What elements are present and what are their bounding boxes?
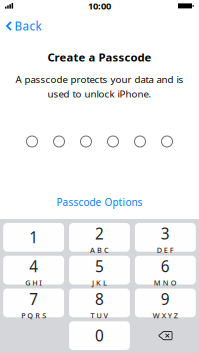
button[interactable]: 2 bbox=[69, 223, 130, 252]
staticText: 5 bbox=[95, 256, 104, 277]
button[interactable]: Delete bbox=[135, 321, 196, 350]
staticText: 10:00 bbox=[88, 0, 111, 12]
staticText: A passcode protects your data and is bbox=[15, 73, 183, 86]
staticText: Passcode Options bbox=[56, 195, 142, 209]
staticText: 4 bbox=[29, 256, 38, 277]
staticText: P Q R S bbox=[21, 310, 46, 320]
button[interactable]: 3 bbox=[135, 223, 196, 252]
staticText: 2 bbox=[95, 223, 104, 244]
button[interactable]: 5 bbox=[69, 256, 130, 285]
staticText: 3 bbox=[161, 223, 170, 244]
staticText: M N O bbox=[154, 278, 177, 288]
staticText: 1 bbox=[29, 227, 38, 248]
staticText: 6 bbox=[161, 256, 170, 277]
staticText: G H I bbox=[25, 278, 42, 288]
button[interactable]: 4 bbox=[3, 256, 64, 285]
staticText: Back bbox=[14, 18, 41, 34]
button[interactable]: Passcode Options bbox=[48, 191, 150, 213]
staticText: D E F bbox=[157, 245, 174, 255]
button[interactable]: Back bbox=[0, 13, 49, 39]
staticText: used to unlock iPhone. bbox=[47, 87, 151, 100]
button[interactable]: 7 bbox=[3, 288, 64, 317]
staticText: A B C bbox=[90, 245, 109, 255]
staticText: 0 bbox=[95, 325, 104, 346]
staticText: Create a Passcode bbox=[47, 49, 151, 65]
staticText: 7 bbox=[29, 288, 38, 309]
staticText: J K L bbox=[92, 278, 107, 288]
button[interactable]: 8 bbox=[69, 288, 130, 317]
button[interactable]: 9 bbox=[135, 288, 196, 317]
button[interactable]: 0 bbox=[69, 321, 130, 350]
button[interactable]: 6 bbox=[135, 256, 196, 285]
button[interactable]: 1 bbox=[3, 223, 64, 252]
staticText: 8 bbox=[95, 288, 104, 309]
staticText: W X Y Z bbox=[153, 310, 178, 320]
staticText: T U V bbox=[90, 310, 108, 320]
staticText: 9 bbox=[161, 288, 170, 309]
